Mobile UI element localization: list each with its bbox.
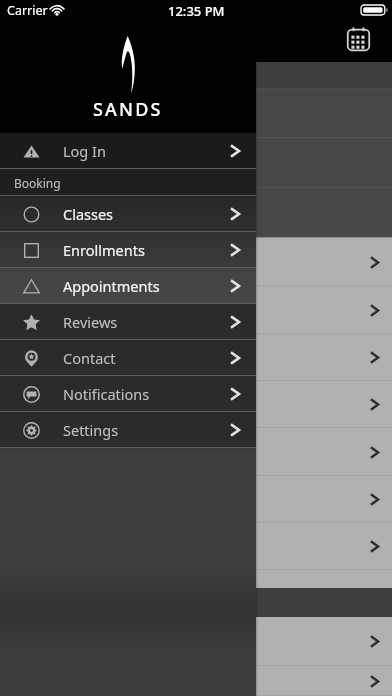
staticText: 12:35 PM bbox=[168, 2, 225, 20]
button[interactable]: Settings bbox=[0, 412, 256, 448]
button[interactable] bbox=[0, 286, 392, 334]
staticText: Reviews bbox=[63, 312, 118, 332]
button[interactable] bbox=[0, 238, 392, 286]
button[interactable] bbox=[0, 476, 392, 523]
button[interactable]: Appointments bbox=[0, 268, 256, 304]
button[interactable]: Log In bbox=[0, 133, 256, 169]
staticText: Booking bbox=[14, 175, 61, 191]
button[interactable] bbox=[0, 666, 392, 696]
button[interactable]: Enrollments bbox=[0, 232, 256, 268]
staticText: Contact bbox=[63, 348, 116, 368]
button[interactable]: Contact bbox=[0, 340, 256, 376]
staticText: Enrollments bbox=[63, 240, 145, 260]
staticText: Appointments bbox=[63, 276, 160, 296]
button[interactable]: Calendar bbox=[340, 21, 376, 57]
staticText: Classes bbox=[63, 204, 114, 224]
button[interactable] bbox=[0, 617, 392, 666]
staticText: Carrier bbox=[7, 2, 48, 19]
button[interactable]: Reviews bbox=[0, 304, 256, 340]
button[interactable] bbox=[0, 428, 392, 476]
button[interactable]: Classes bbox=[0, 196, 256, 232]
button[interactable]: Notifications bbox=[0, 376, 256, 412]
button[interactable] bbox=[0, 334, 392, 381]
button[interactable] bbox=[0, 523, 392, 570]
button[interactable] bbox=[0, 381, 392, 428]
staticText: Notifications bbox=[63, 384, 150, 404]
staticText: Log In bbox=[63, 141, 106, 161]
staticText: SANDS bbox=[93, 97, 163, 122]
staticText: Settings bbox=[63, 420, 119, 440]
